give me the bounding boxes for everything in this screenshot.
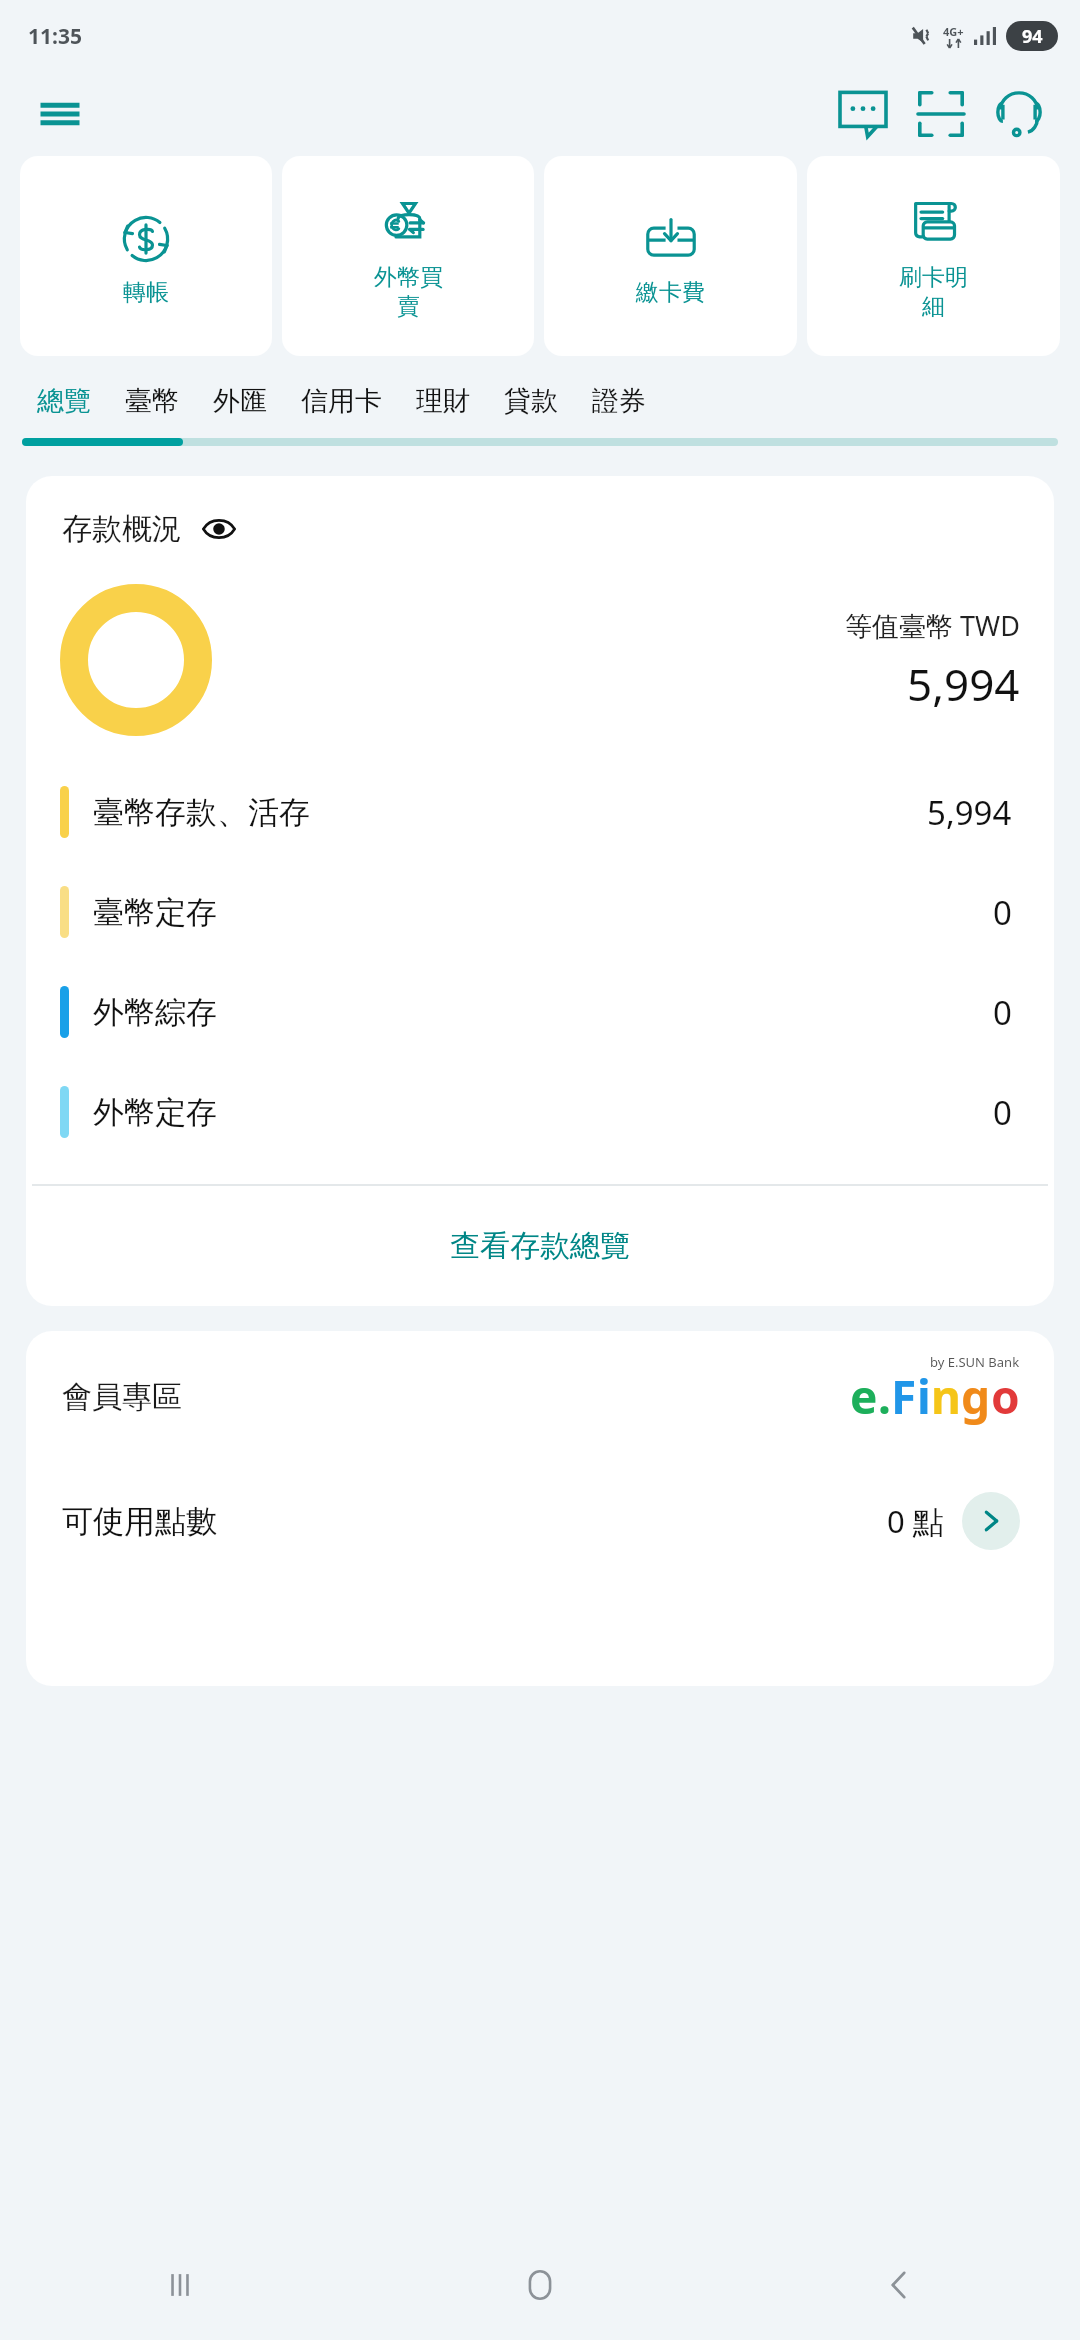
staticText: 可使用點數 [62,1502,217,1541]
staticText: by E.SUN Bank [930,1353,1020,1371]
staticText: 0 [993,890,1012,935]
staticText: 總覽 [37,384,91,418]
button[interactable]: Toggle balance visibility [200,510,238,548]
button[interactable]: 理財 [416,370,470,432]
staticText: 賣 [397,292,420,321]
staticText: 細 [922,292,945,321]
button[interactable]: 轉帳 [20,156,272,356]
staticText: 刷卡明 [899,263,968,292]
staticText: . [878,1365,891,1428]
staticText: 0 [993,990,1012,1035]
button[interactable]: 繳卡費 [544,156,797,356]
button[interactable]: 臺幣 [125,370,179,432]
button[interactable]: Recents [0,2230,360,2340]
staticText: 等值臺幣 TWD [845,607,1020,644]
staticText: 存款概況 [62,510,182,548]
staticText: 臺幣 [125,384,179,418]
staticText: g [961,1365,991,1428]
staticText: 4G+ [943,24,964,39]
staticText: 5,994 [907,654,1020,714]
button[interactable]: 總覽 [37,370,91,432]
button[interactable]: 外幣綜存 [26,962,1054,1062]
staticText: 證券 [592,384,646,418]
staticText: 臺幣存款、活存 [93,793,310,832]
staticText: 外幣買 [374,263,443,292]
button[interactable]: 信用卡 [301,370,382,432]
staticText: 94 [1022,24,1043,49]
button[interactable]: 外幣定存 [26,1062,1054,1162]
staticText: e [850,1365,878,1428]
button[interactable]: 外幣買 [282,156,534,356]
button[interactable]: 證券 [592,370,646,432]
button[interactable]: 臺幣存款、活存 [26,762,1054,862]
button[interactable]: 查看存款總覽 [26,1186,1054,1306]
staticText: 理財 [416,384,470,418]
button[interactable]: 貸款 [504,370,558,432]
staticText: o [991,1365,1020,1428]
button[interactable]: 刷卡明 [807,156,1060,356]
staticText: 會員專區 [62,1378,182,1416]
staticText: 貸款 [504,384,558,418]
staticText: 轉帳 [123,278,169,307]
button[interactable]: 外匯 [213,370,267,432]
button[interactable]: Home [360,2230,720,2340]
staticText: 臺幣定存 [93,893,217,932]
staticText: 5,994 [927,790,1012,835]
staticText: 查看存款總覽 [450,1227,630,1265]
button[interactable]: Messages [832,83,894,145]
button[interactable]: Menu [38,92,82,136]
staticText: n [931,1365,961,1428]
staticText: 0 點 [887,1500,944,1542]
button[interactable]: Customer service [988,83,1050,145]
button[interactable]: 臺幣定存 [26,862,1054,962]
staticText: 11:35 [28,22,82,51]
staticText: 外幣定存 [93,1093,217,1132]
staticText: F [891,1365,917,1428]
staticText: 信用卡 [301,384,382,418]
button[interactable]: Scan QR code [910,83,972,145]
button[interactable]: 可使用點數 [26,1466,1054,1576]
staticText: 外幣綜存 [93,993,217,1032]
staticText: 繳卡費 [636,278,705,307]
button[interactable]: Back [720,2230,1080,2340]
staticText: i [917,1365,931,1428]
staticText: 0 [993,1090,1012,1135]
staticText: 外匯 [213,384,267,418]
